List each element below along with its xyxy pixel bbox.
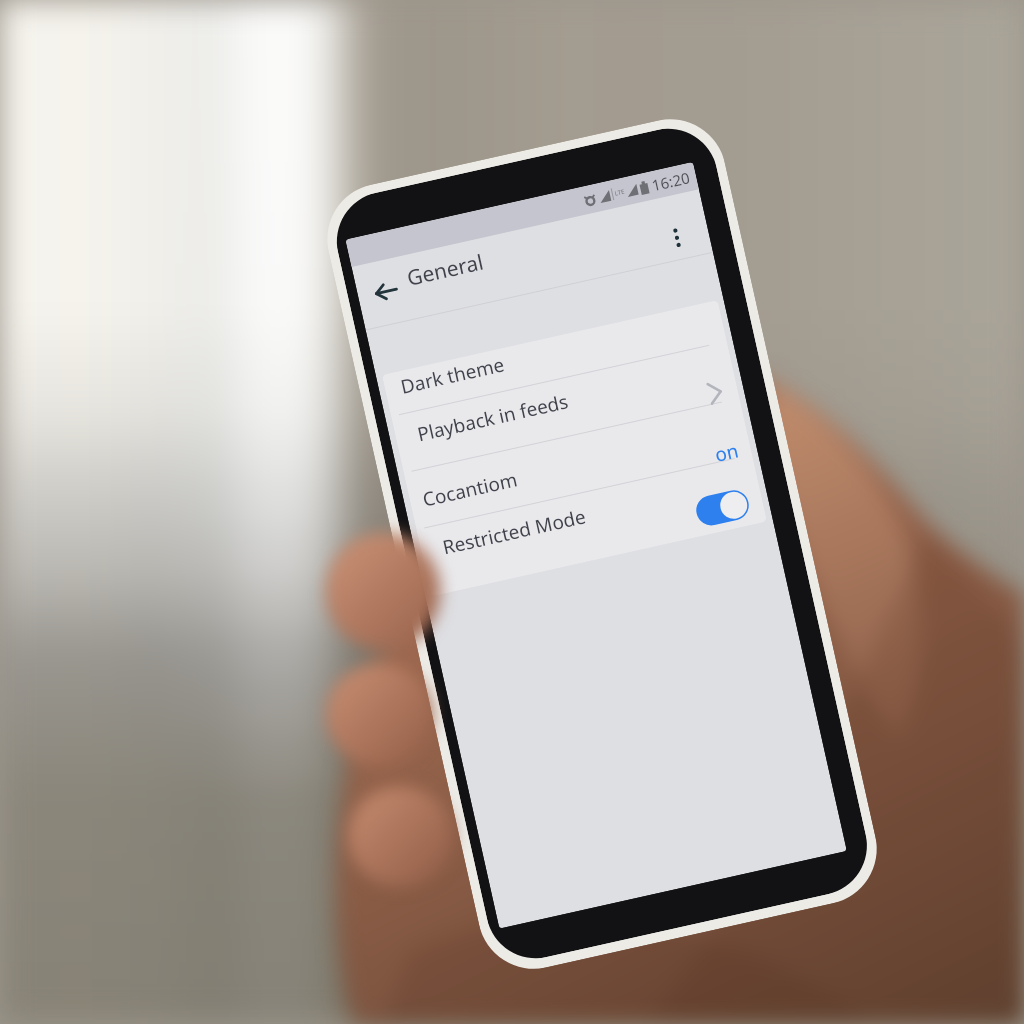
button[interactable]: Back (351, 189, 713, 329)
button[interactable]: Toggle setting (693, 487, 752, 528)
staticText: Dark theme (398, 351, 507, 400)
button[interactable]: Cocantiom (399, 401, 758, 529)
staticText: General (404, 247, 487, 293)
other: Back (368, 273, 403, 309)
staticText: LTE (614, 188, 625, 198)
button[interactable] (366, 253, 723, 376)
button[interactable]: More options (654, 212, 700, 263)
staticText: Cocantiom (420, 466, 521, 513)
staticText: Playback in feeds (415, 388, 571, 447)
staticText: on (712, 437, 742, 468)
staticText: 16:20 (650, 167, 692, 195)
button[interactable]: Playback in feeds (385, 338, 743, 466)
button[interactable]: Restricted Mode (410, 451, 769, 579)
staticText: Restricted Mode (440, 503, 588, 560)
button[interactable]: Dark theme (374, 289, 733, 417)
